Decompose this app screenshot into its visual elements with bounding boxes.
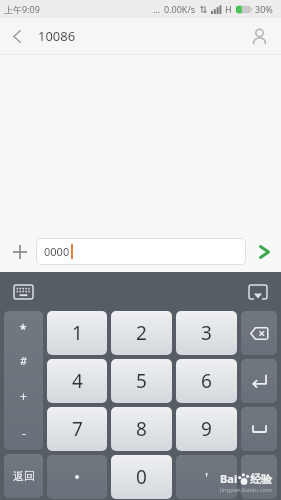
staticText: 上午9:09 bbox=[4, 3, 40, 15]
button[interactable]: ' bbox=[176, 455, 237, 499]
button[interactable]: 5 bbox=[111, 359, 172, 403]
button[interactable] bbox=[243, 272, 273, 311]
staticText: jingyan.baidu.com bbox=[220, 486, 272, 494]
staticText: 9 bbox=[201, 416, 212, 442]
staticText: ' bbox=[205, 468, 209, 487]
button[interactable]: 0000 bbox=[36, 238, 246, 265]
staticText: 2 bbox=[136, 320, 147, 346]
staticText: 0.00K/s bbox=[164, 3, 196, 15]
staticText: # bbox=[20, 353, 28, 368]
staticText: 经验 bbox=[250, 472, 272, 486]
staticText: Bai bbox=[220, 471, 238, 486]
staticText: … bbox=[153, 3, 161, 15]
button[interactable]: 7 bbox=[47, 407, 107, 451]
button[interactable]: 8 bbox=[111, 407, 172, 451]
staticText: 10086 bbox=[38, 27, 76, 45]
button[interactable]: 2 bbox=[111, 311, 172, 355]
staticText: 返回 bbox=[13, 469, 35, 483]
button[interactable]: ★ bbox=[4, 311, 43, 450]
button[interactable] bbox=[0, 18, 33, 54]
button[interactable] bbox=[47, 455, 107, 499]
button[interactable] bbox=[251, 231, 277, 272]
staticText: 30% bbox=[255, 3, 273, 15]
staticText: 6 bbox=[201, 368, 212, 394]
staticText: 0000 bbox=[44, 244, 70, 259]
staticText: 1 bbox=[72, 320, 83, 346]
staticText: 5 bbox=[136, 368, 147, 394]
button[interactable]: 4 bbox=[47, 359, 107, 403]
staticText: 4 bbox=[72, 368, 83, 394]
button[interactable]: 6 bbox=[176, 359, 237, 403]
button[interactable]: 9 bbox=[176, 407, 237, 451]
button[interactable]: 返回 bbox=[4, 454, 43, 498]
button[interactable] bbox=[237, 18, 281, 54]
button[interactable]: 0 bbox=[111, 455, 172, 499]
button[interactable]: 3 bbox=[176, 311, 237, 355]
staticText: ★ bbox=[19, 322, 28, 332]
staticText: - bbox=[22, 425, 26, 441]
button[interactable] bbox=[241, 359, 277, 403]
staticText: 0 bbox=[136, 464, 147, 490]
staticText: + bbox=[20, 388, 27, 404]
staticText: H bbox=[225, 3, 232, 15]
staticText: 8 bbox=[136, 416, 147, 442]
staticText: 3 bbox=[201, 320, 212, 346]
button[interactable] bbox=[241, 311, 277, 355]
button[interactable] bbox=[6, 231, 34, 272]
button[interactable] bbox=[241, 407, 277, 451]
button[interactable] bbox=[241, 455, 277, 499]
button[interactable]: 1 bbox=[47, 311, 107, 355]
staticText: 7 bbox=[72, 416, 83, 442]
button[interactable] bbox=[8, 272, 38, 311]
